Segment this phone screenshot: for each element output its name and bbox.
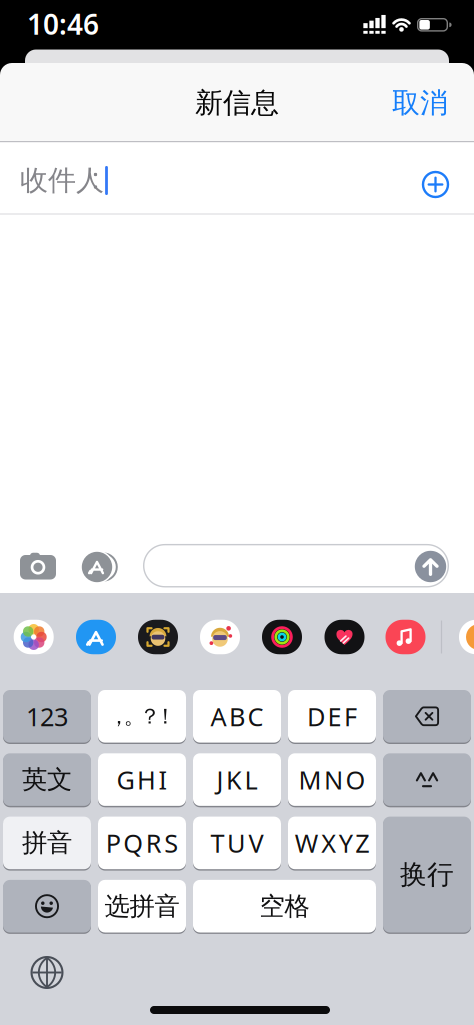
button[interactable]: 英文: [3, 753, 91, 806]
button[interactable]: 信息应用: [80, 550, 120, 584]
button[interactable]: 选拼音: [98, 880, 186, 932]
button[interactable]: 数码点触: [324, 620, 364, 654]
button[interactable]: 添加联系人: [422, 171, 449, 198]
button[interactable]: JKL: [193, 753, 281, 806]
button[interactable]: 相机: [20, 551, 56, 580]
staticText: TUV: [210, 826, 263, 860]
button[interactable]: 照片: [14, 620, 54, 654]
staticText: 123: [26, 699, 68, 733]
button[interactable]: 123: [3, 690, 91, 743]
button[interactable]: GHI: [98, 753, 186, 806]
button[interactable]: MNO: [288, 753, 376, 806]
button[interactable]: ，。？！: [98, 690, 186, 743]
button[interactable]: 健身记录: [262, 620, 302, 654]
staticText: 取消: [392, 86, 448, 120]
button[interactable]: 颜文字: [383, 753, 471, 806]
staticText: MNO: [298, 763, 365, 796]
button[interactable]: App Store: [76, 620, 116, 654]
button[interactable]: 音乐: [385, 620, 425, 654]
button[interactable]: 表情: [3, 880, 91, 932]
staticText: 英文: [22, 764, 72, 795]
button[interactable]: 换行: [383, 817, 471, 932]
staticText: GHI: [116, 763, 167, 796]
button[interactable]: 空格: [193, 880, 376, 932]
staticText: 选拼音: [104, 891, 179, 922]
button[interactable]: ABC: [193, 690, 281, 743]
staticText: ABC: [210, 699, 263, 733]
button[interactable]: 拟我表情贴纸: [200, 620, 240, 654]
button[interactable]: 发送: [415, 551, 446, 582]
staticText: WXYZ: [295, 826, 369, 860]
button[interactable]: WXYZ: [288, 817, 376, 869]
staticText: 拼音: [22, 827, 72, 858]
staticText: PQRS: [106, 826, 178, 860]
button[interactable]: 取消: [392, 86, 448, 120]
button[interactable]: 信息输入框: [143, 544, 449, 587]
button[interactable]: 拟我表情相机: [138, 620, 178, 654]
button[interactable]: TUV: [193, 817, 281, 869]
staticText: 新信息: [195, 86, 279, 120]
staticText: DEF: [307, 699, 357, 733]
staticText: 换行: [400, 858, 454, 891]
button[interactable]: 更多应用: [459, 620, 474, 654]
button[interactable]: PQRS: [98, 817, 186, 869]
button[interactable]: 切换输入法: [30, 956, 63, 989]
button[interactable]: DEF: [288, 690, 376, 743]
staticText: 空格: [259, 891, 309, 922]
button[interactable]: 拼音: [3, 817, 91, 869]
staticText: JKL: [216, 763, 257, 796]
staticText: 10:46: [27, 5, 99, 43]
button[interactable]: 删除: [383, 690, 471, 743]
staticText: ，。？！: [108, 703, 176, 729]
staticText: 收件人: [20, 163, 104, 198]
